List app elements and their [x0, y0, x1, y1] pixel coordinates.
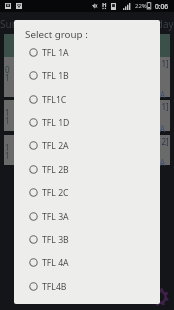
- button[interactable]: TFL 2A: [14, 134, 160, 157]
- staticText: 0:06: [155, 2, 169, 11]
- staticText: 1: [5, 107, 10, 118]
- button[interactable]: TFL 3A: [14, 205, 160, 228]
- button[interactable]: TFL 1D: [14, 111, 160, 134]
- staticText: TFL 1A: [42, 47, 69, 59]
- staticText: 1: [5, 115, 10, 126]
- staticText: Select group :: [25, 28, 88, 41]
- staticText: [TFL 2]: [144, 136, 169, 147]
- button[interactable]: Settings: [146, 283, 174, 310]
- staticText: 22%: [135, 2, 147, 10]
- button[interactable]: TFL4B: [14, 275, 160, 298]
- staticText: [TFL 1]: [144, 58, 169, 69]
- staticText: Sunday: [139, 17, 174, 31]
- staticText: A: [160, 123, 166, 134]
- staticText: TFL 2B: [42, 164, 69, 176]
- staticText: H+: [102, 1, 107, 9]
- staticText: TFL 2A: [42, 140, 69, 152]
- button[interactable]: TFL 2B: [14, 158, 160, 181]
- staticText: TFL 1D: [42, 117, 70, 129]
- staticText: 1: [5, 150, 10, 161]
- button[interactable]: TFL 1A: [14, 41, 160, 64]
- staticText: TFL 3B: [42, 234, 69, 246]
- staticText: TFL 3A: [42, 211, 69, 223]
- button[interactable]: TFL 1B: [14, 64, 160, 87]
- staticText: Sunday: [0, 17, 35, 31]
- staticText: TFL4B: [42, 281, 67, 293]
- staticText: 1: [5, 142, 10, 153]
- staticText: TFL 2C: [42, 187, 69, 199]
- staticText: A: [160, 157, 166, 168]
- staticText: 1: [5, 72, 10, 83]
- staticText: TFL1C: [42, 94, 67, 106]
- button[interactable]: TFL 2C: [14, 181, 160, 204]
- button[interactable]: TFL 3B: [14, 228, 160, 251]
- staticText: TFL 4A: [42, 257, 69, 269]
- staticText: TFL 1B: [42, 70, 69, 82]
- staticText: 0: [5, 64, 10, 75]
- button[interactable]: TFL 4A: [14, 251, 160, 274]
- staticText: A: [160, 89, 166, 100]
- staticText: [TFL 1]: [144, 101, 169, 112]
- button[interactable]: TFL1C: [14, 88, 160, 111]
